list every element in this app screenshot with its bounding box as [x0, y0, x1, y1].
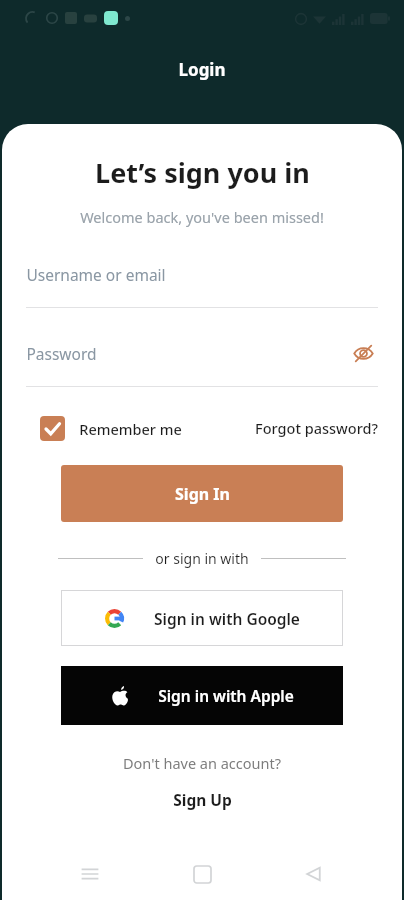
- staticText: Sign In: [175, 483, 230, 505]
- button[interactable]: Password: [2, 336, 402, 387]
- staticText: Sign in with Apple: [158, 685, 294, 706]
- button[interactable]: Home: [178, 850, 226, 898]
- button[interactable]: Remember me: [40, 416, 186, 441]
- staticText: Remember me: [79, 419, 182, 439]
- button[interactable]: Forgot password?: [255, 418, 378, 438]
- staticText: or sign in with: [155, 549, 249, 568]
- button[interactable]: Back: [290, 850, 338, 898]
- button[interactable]: Recents: [66, 850, 114, 898]
- staticText: Sign Up: [173, 789, 232, 810]
- button[interactable]: Sign In: [61, 465, 343, 522]
- button[interactable]: Sign Up: [163, 787, 242, 812]
- button[interactable]: Sign in with Apple: [61, 666, 343, 725]
- button[interactable]: Username or email: [2, 257, 402, 308]
- button[interactable]: Sign in with Google: [61, 590, 343, 646]
- staticText: Forgot password?: [255, 418, 378, 438]
- staticText: Username or email: [26, 264, 166, 285]
- staticText: Don't have an account?: [123, 753, 281, 773]
- button[interactable]: Show password: [348, 338, 378, 368]
- staticText: Let’s sign you in: [95, 154, 310, 191]
- staticText: Sign in with Google: [154, 608, 300, 629]
- staticText: Password: [26, 343, 97, 364]
- staticText: Login: [178, 58, 226, 81]
- staticText: Welcome back, you've been missed!: [80, 207, 324, 227]
